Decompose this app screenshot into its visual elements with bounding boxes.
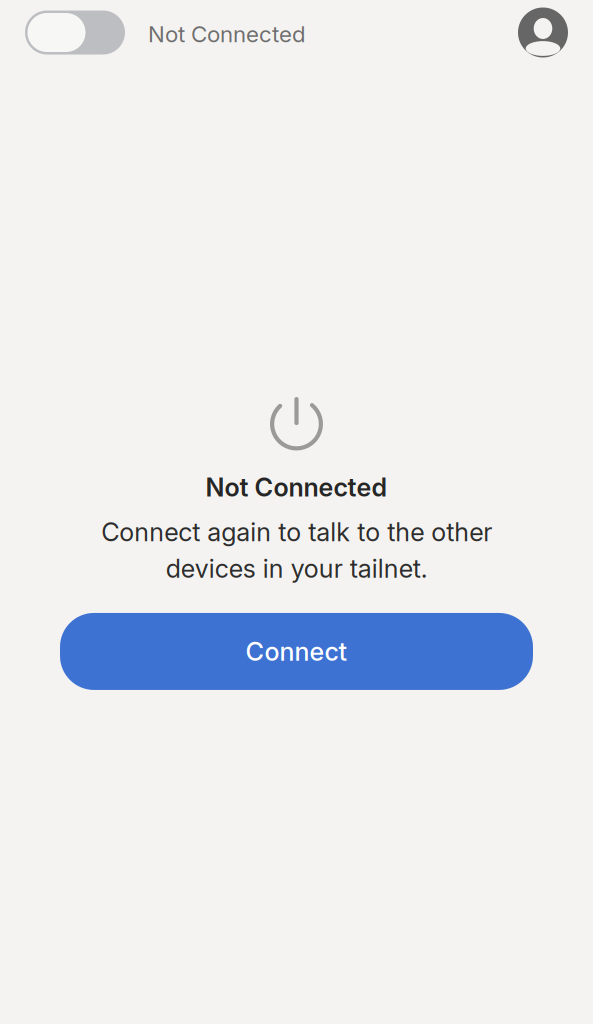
staticText: Not Connected <box>205 472 387 503</box>
staticText: Connect <box>245 636 347 667</box>
staticText: Connect again to talk to the other devic… <box>101 517 492 584</box>
button[interactable]: Connect <box>60 613 533 690</box>
button[interactable]: Connection toggle, off <box>25 10 125 54</box>
button[interactable]: Account <box>518 7 568 57</box>
staticText: Not Connected <box>148 20 306 47</box>
